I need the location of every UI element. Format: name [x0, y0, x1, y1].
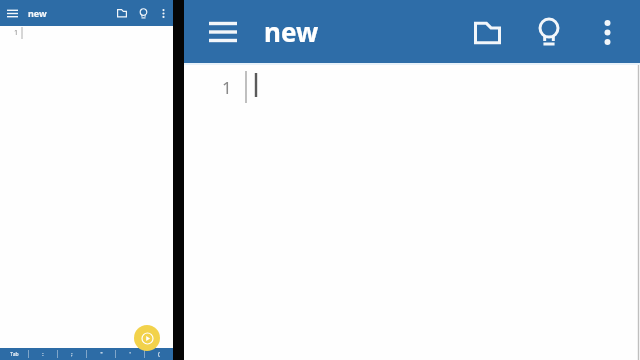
button[interactable]: Hint [520, 3, 578, 61]
staticText: 1 [14, 28, 19, 38]
button[interactable]: Open folder [458, 3, 516, 61]
button[interactable]: ( [145, 348, 173, 360]
button[interactable]: Play [134, 325, 160, 351]
staticText: new [264, 14, 319, 49]
button[interactable]: ; [58, 348, 86, 360]
staticText: " [100, 351, 103, 358]
button[interactable]: Menu [194, 3, 252, 61]
button[interactable]: : [29, 348, 57, 360]
button[interactable]: Menu [0, 0, 24, 26]
button[interactable]: " [87, 348, 115, 360]
button[interactable]: Open folder [111, 0, 133, 26]
staticText: : [42, 351, 44, 358]
button[interactable]: Tab [0, 348, 28, 360]
staticText: ' [129, 351, 131, 358]
button[interactable]: ' [116, 348, 144, 360]
staticText: new [28, 7, 47, 19]
staticText: ( [158, 351, 160, 358]
staticText: ; [71, 351, 73, 358]
button[interactable]: More options [580, 5, 634, 59]
staticText: Tab [10, 351, 19, 358]
staticText: 1 [222, 76, 232, 99]
button[interactable]: Hint [133, 0, 153, 26]
button[interactable]: More options [153, 0, 173, 26]
